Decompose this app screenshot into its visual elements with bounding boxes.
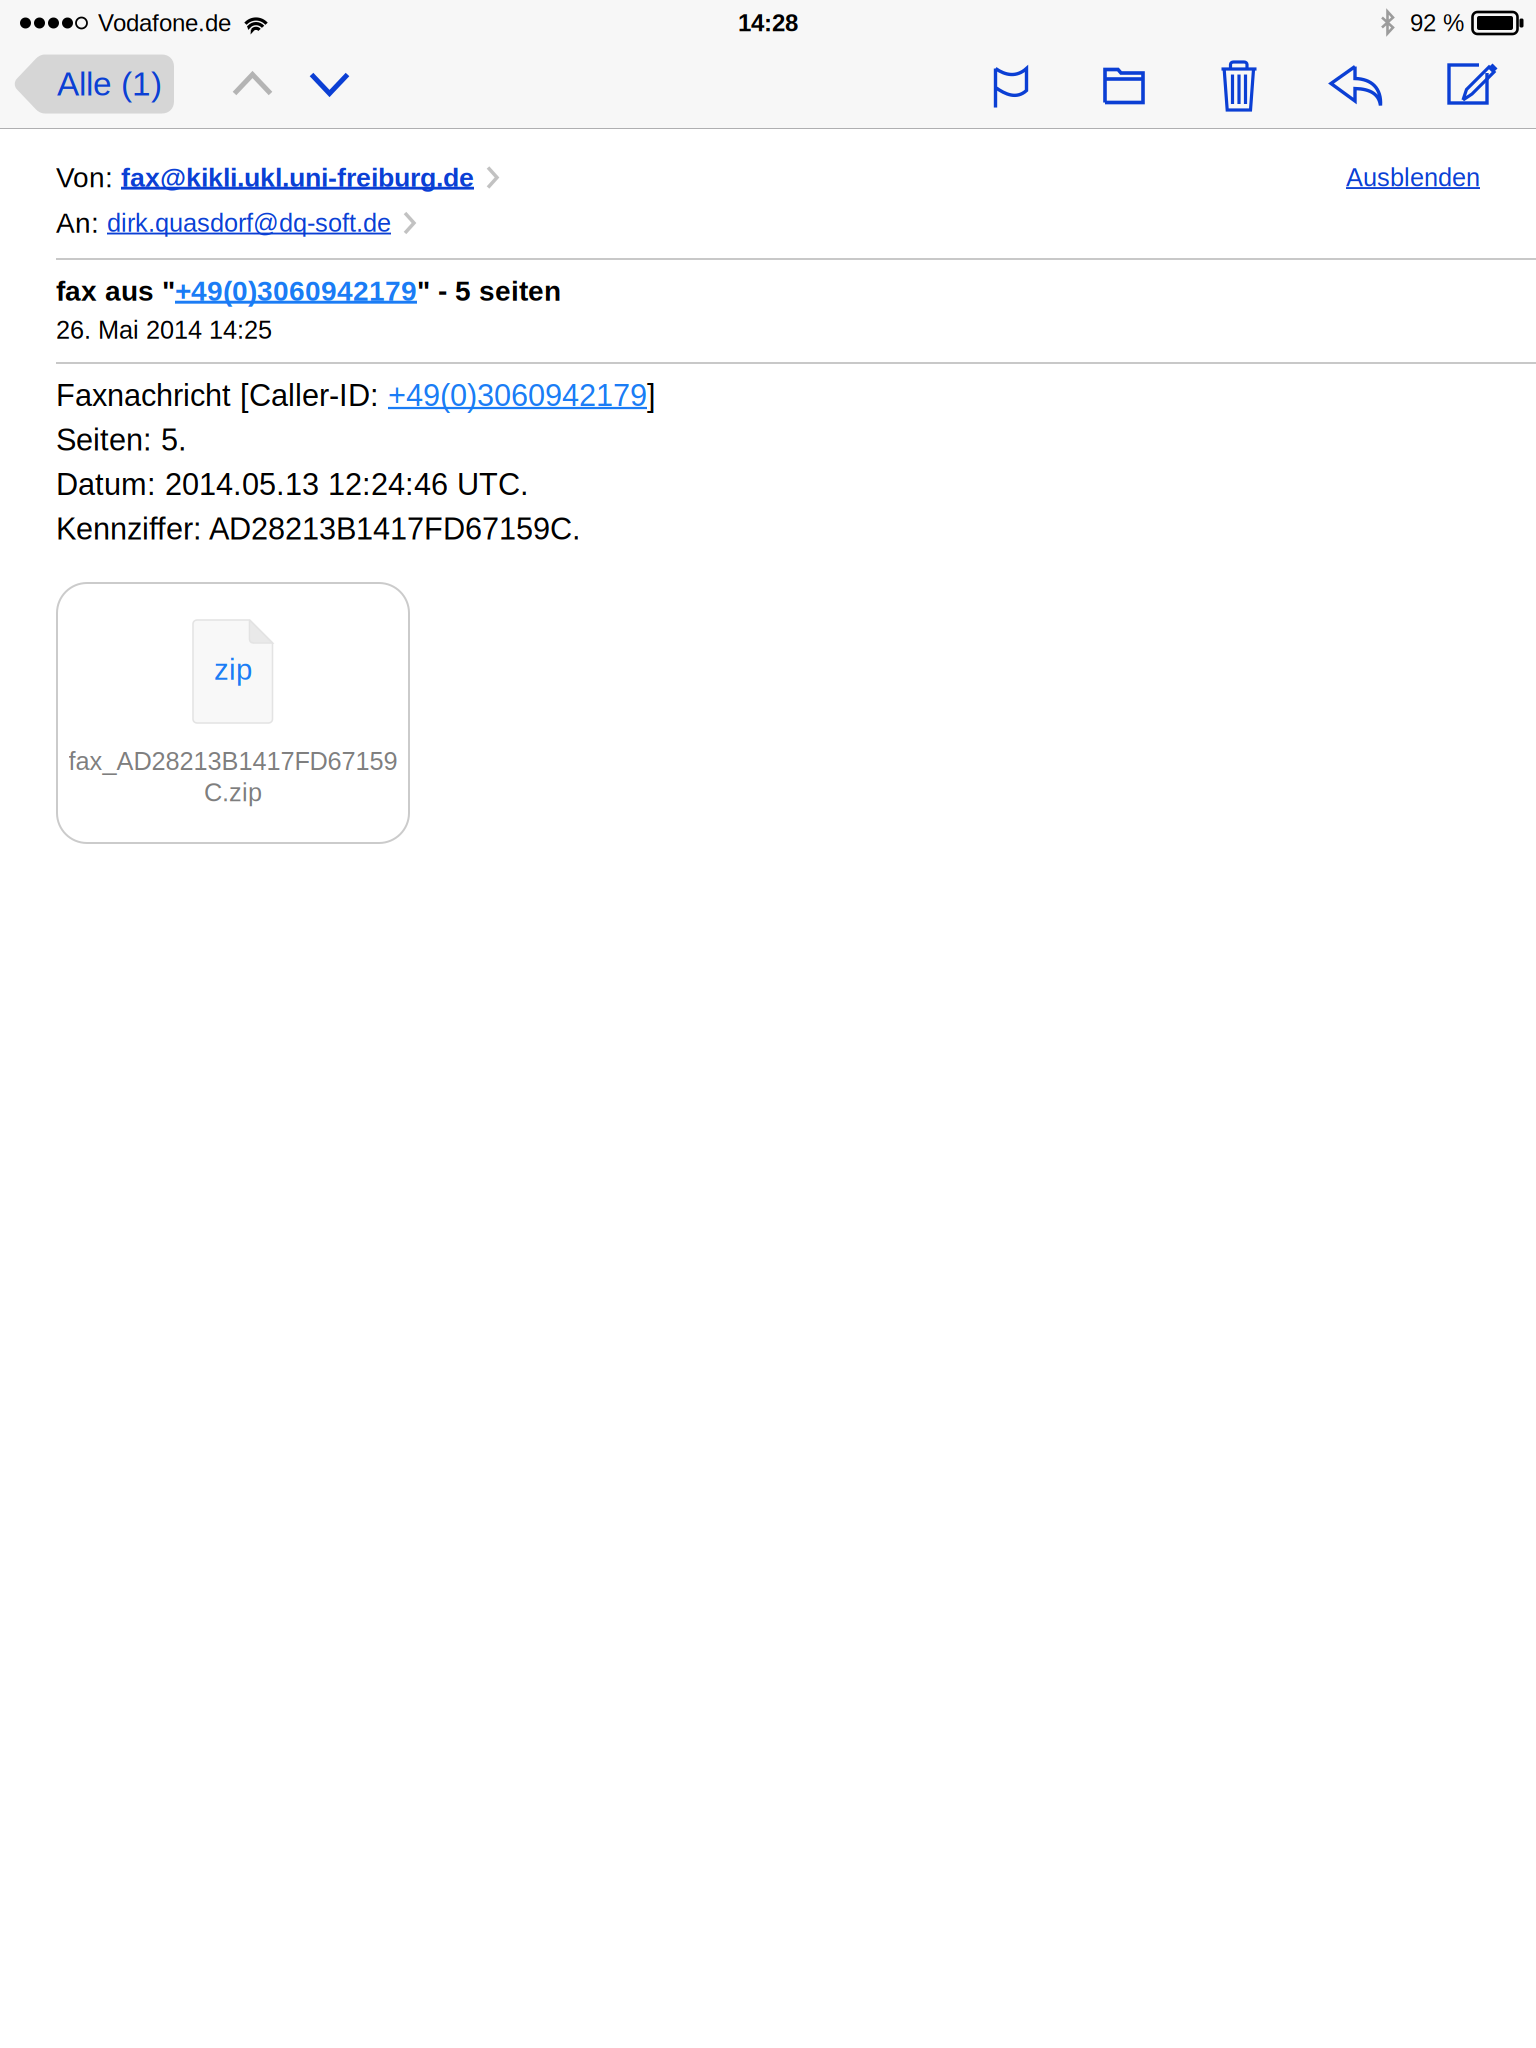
button[interactable]: Ausblenden (1346, 163, 1480, 192)
staticText: ] (647, 378, 656, 412)
staticText: +49(0)3060942179 (388, 378, 647, 412)
button[interactable]: Flag (955, 44, 1067, 124)
staticText: 14:28 (738, 10, 798, 36)
button[interactable]: Sender fax@kikli.ukl.uni-freiburg.de (121, 163, 500, 192)
staticText: Faxnachricht [Caller-ID: (56, 378, 388, 412)
button[interactable]: Back to Alle (1) (14, 44, 214, 124)
staticText: Ausblenden (1346, 163, 1480, 192)
staticText: Kennziffer: AD28213B1417FD67159C. (56, 512, 581, 546)
staticText: Von: (56, 162, 121, 193)
staticText: 26. Mai 2014 14:25 (56, 316, 272, 344)
staticText: fax aus " (56, 275, 175, 307)
staticText: fax@kikli.ukl.uni-freiburg.de (121, 163, 474, 192)
staticText: dirk.quasdorf@dq-soft.de (107, 209, 391, 237)
staticText: 92 % (1410, 10, 1464, 36)
button[interactable]: Recipient dirk.quasdorf@dq-soft.de (107, 209, 417, 237)
button[interactable]: Previous message (214, 44, 291, 124)
button[interactable]: Call +49(0)3060942179 (388, 378, 647, 412)
staticText: An: (56, 207, 107, 239)
staticText: Alle (1) (57, 65, 162, 103)
staticText: Vodafone.de (98, 10, 231, 36)
button[interactable]: Compose (1415, 44, 1531, 124)
staticText: C.zip (204, 778, 262, 807)
staticText: " - 5 seiten (417, 275, 561, 307)
button[interactable]: Attachment fax_AD28213B1417FD67159C.zip (57, 583, 409, 843)
button[interactable]: Reply (1297, 44, 1415, 124)
button[interactable]: Move to folder (1067, 44, 1181, 124)
staticText: +49(0)3060942179 (175, 275, 417, 307)
button[interactable]: Next message (291, 44, 368, 124)
button[interactable]: Call +49(0)3060942179 (175, 275, 417, 307)
staticText: Datum: 2014.05.13 12:24:46 UTC. (56, 467, 529, 501)
staticText: zip (214, 653, 252, 686)
staticText: Seiten: 5. (56, 423, 187, 457)
button[interactable]: Delete (1181, 44, 1297, 124)
staticText: fax_AD28213B1417FD67159 (68, 747, 397, 775)
